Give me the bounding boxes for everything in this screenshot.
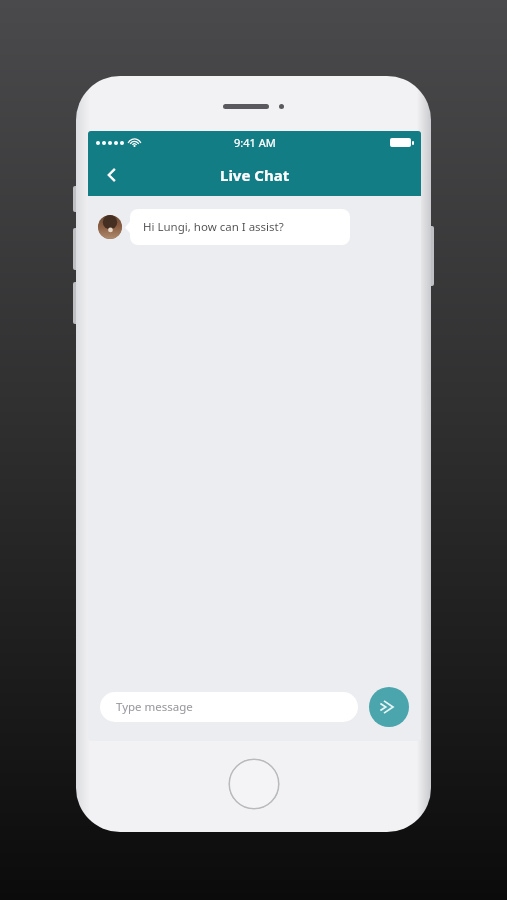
staticText: Type message xyxy=(116,699,193,715)
button[interactable]: Home xyxy=(228,758,280,810)
button[interactable]: Hi Lungi, how can I assist? xyxy=(98,209,351,245)
button[interactable]: Send xyxy=(369,687,409,727)
staticText: Hi Lungi, how can I assist? xyxy=(143,219,284,235)
button[interactable]: Type message xyxy=(100,692,358,722)
button[interactable]: Back xyxy=(94,157,130,193)
staticText: 9:41 AM xyxy=(234,135,276,150)
staticText: Live Chat xyxy=(220,165,290,185)
